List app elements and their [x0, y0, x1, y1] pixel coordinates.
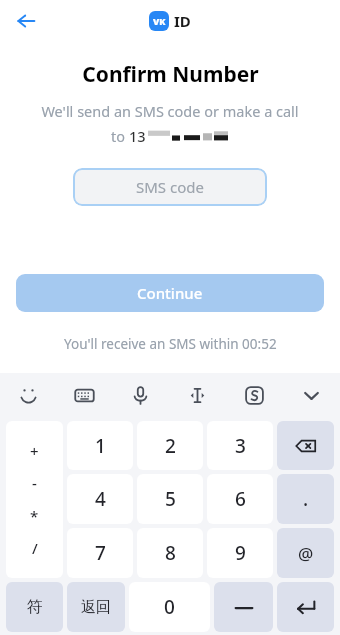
button[interactable]: Keyboard [56, 373, 112, 418]
staticText: - [32, 473, 37, 493]
button[interactable]: Voice input [112, 373, 169, 418]
button[interactable]: 9 [207, 528, 273, 578]
staticText: 4 [95, 486, 106, 512]
button[interactable]: @ [277, 528, 334, 578]
button[interactable]: SMS code [73, 168, 267, 206]
button[interactable]: 6 [207, 474, 273, 524]
staticText: ID [174, 11, 191, 31]
staticText: to [111, 126, 129, 146]
button[interactable]: 2 [137, 421, 203, 470]
staticText: * [30, 506, 39, 526]
staticText: 13 [129, 126, 146, 146]
button[interactable]: 8 [137, 528, 203, 578]
staticText: @ [298, 542, 314, 565]
button[interactable]: Continue [16, 274, 324, 312]
button[interactable]: Hide keyboard [283, 373, 340, 418]
button[interactable]: 3 [207, 421, 273, 470]
staticText: / [32, 538, 38, 558]
button[interactable]: Sogou [226, 373, 283, 418]
button[interactable]: 5 [137, 474, 203, 524]
staticText: 3 [235, 433, 246, 459]
button[interactable]: 1 [67, 421, 133, 470]
button[interactable]: Backspace [277, 421, 334, 470]
staticText: 5 [165, 486, 176, 512]
staticText: VK [153, 15, 166, 27]
button[interactable]: 0 [129, 582, 210, 632]
button[interactable]: 7 [67, 528, 133, 578]
staticText: Continue [137, 283, 203, 303]
staticText: 9 [235, 540, 246, 566]
staticText: 符 [27, 597, 43, 617]
button[interactable]: 返回 [67, 582, 125, 632]
staticText: 7 [95, 540, 106, 566]
staticText: + [30, 441, 39, 461]
button[interactable]: Back [6, 1, 46, 41]
button[interactable]: 4 [67, 474, 133, 524]
staticText: SMS code [136, 177, 204, 197]
staticText: 0 [164, 594, 175, 620]
staticText: 8 [165, 540, 176, 566]
button[interactable]: . [277, 474, 334, 524]
staticText: 返回 [81, 598, 111, 617]
button[interactable]: Move cursor [169, 373, 226, 418]
staticText: 2 [165, 433, 176, 459]
staticText: 6 [235, 486, 246, 512]
staticText: Confirm Number [82, 60, 259, 89]
button[interactable]: You'll receive an SMS within 00:52 [64, 335, 277, 353]
button[interactable]: Space [214, 582, 273, 632]
button[interactable]: operators [6, 421, 63, 578]
button[interactable]: 符 [6, 582, 63, 632]
staticText: We'll send an SMS code or make a call [26, 101, 314, 121]
button[interactable]: Enter [277, 582, 334, 632]
button[interactable]: Emoji [0, 373, 56, 418]
staticText: . [303, 486, 309, 512]
staticText: 1 [95, 433, 106, 459]
